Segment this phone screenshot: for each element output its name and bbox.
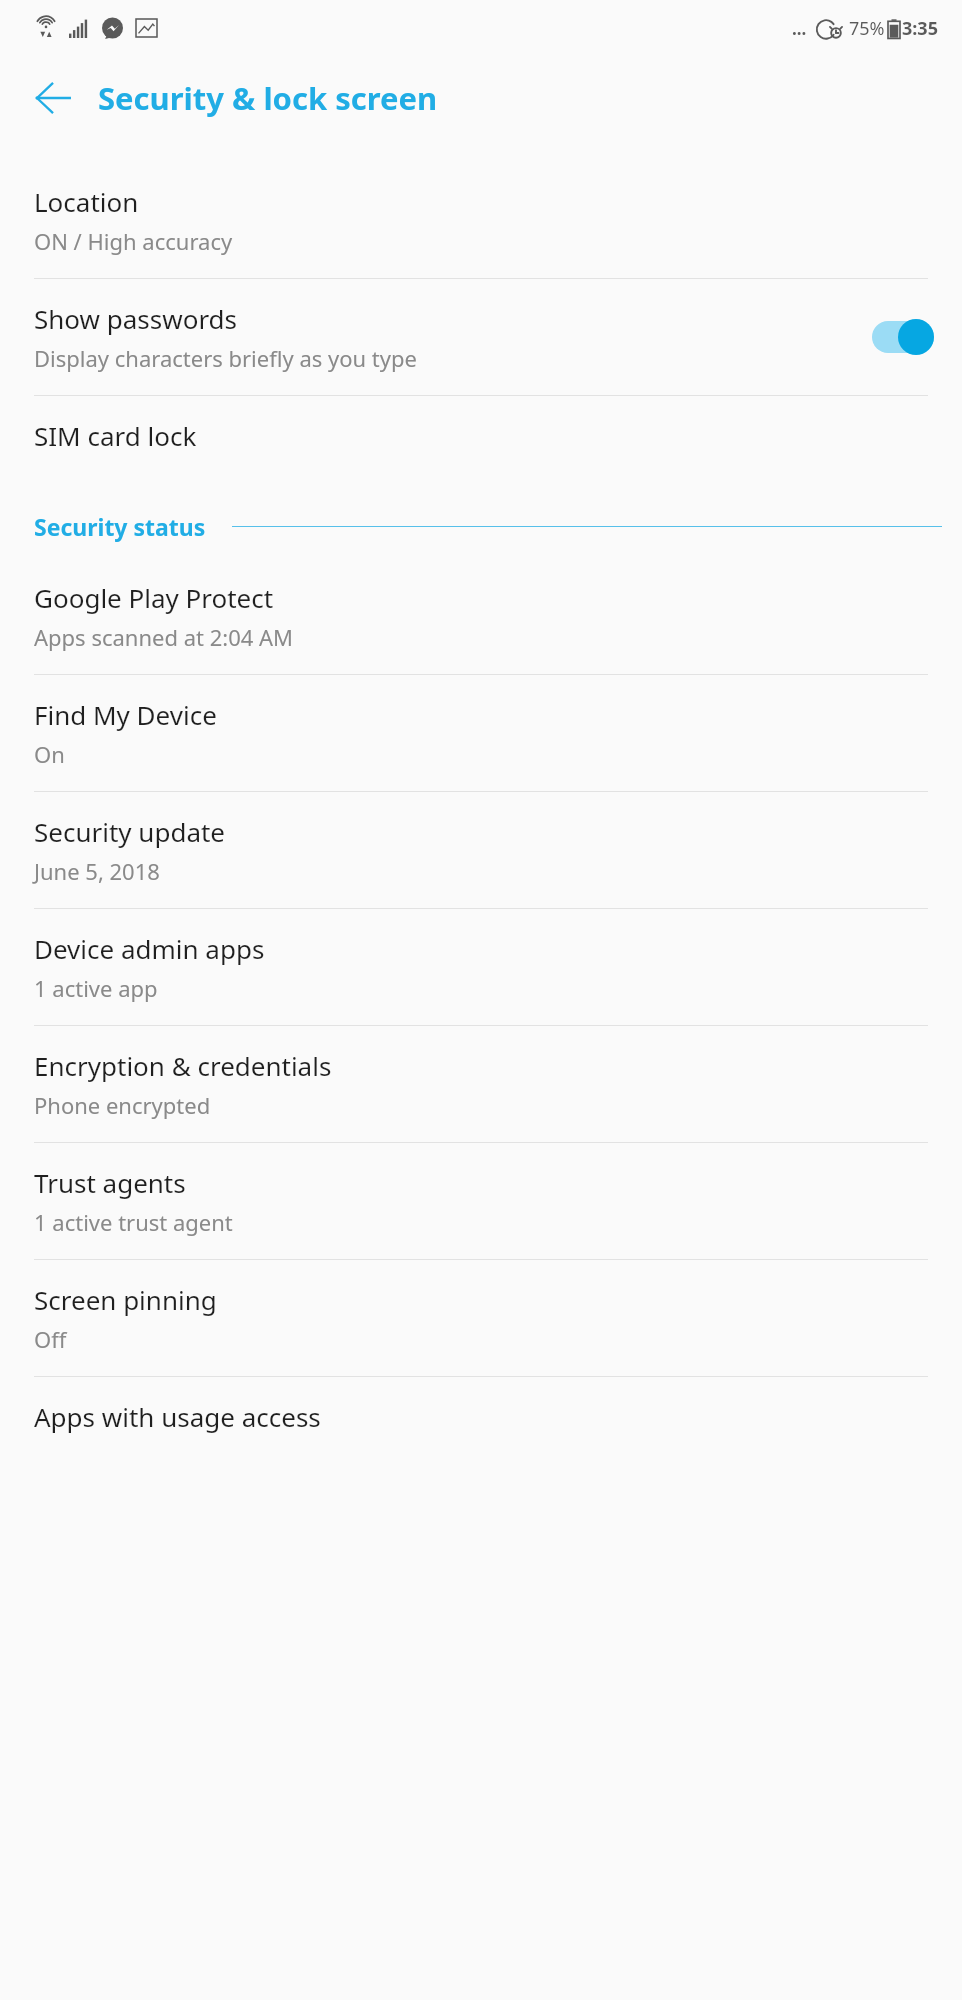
button[interactable]: Find My Device xyxy=(0,675,962,791)
button[interactable]: Security update xyxy=(0,792,962,908)
button[interactable]: Trust agents xyxy=(0,1143,962,1259)
staticText: ON / High accuracy xyxy=(34,226,233,256)
staticText: Trust agents xyxy=(34,1165,186,1200)
staticText: 3:35 xyxy=(902,16,938,41)
staticText: Google Play Protect xyxy=(34,580,274,615)
staticText: Apps scanned at 2:04 AM xyxy=(34,622,294,652)
staticText: 75% xyxy=(849,16,885,41)
staticText: Apps with usage access xyxy=(34,1399,321,1434)
staticText: Security update xyxy=(34,814,226,849)
staticText: 1 active trust agent xyxy=(34,1207,233,1237)
button[interactable]: Location xyxy=(0,162,962,278)
staticText: Encryption & credentials xyxy=(34,1048,332,1083)
staticText: Security status xyxy=(34,511,206,542)
staticText: Find My Device xyxy=(34,697,217,732)
staticText: Off xyxy=(34,1324,67,1354)
staticText: Show passwords xyxy=(34,301,238,336)
staticText: Display characters briefly as you type xyxy=(34,343,417,373)
staticText: Screen pinning xyxy=(34,1282,217,1317)
button[interactable]: Device admin apps xyxy=(0,909,962,1025)
button[interactable]: Back xyxy=(22,67,84,129)
staticText: 1 active app xyxy=(34,973,158,1003)
staticText: ... xyxy=(792,17,807,40)
button[interactable]: Show passwords xyxy=(0,279,962,395)
button[interactable]: SIM card lock xyxy=(0,396,962,475)
button[interactable]: Screen pinning xyxy=(0,1260,962,1376)
staticText: Security & lock screen xyxy=(98,77,438,119)
staticText: June 5, 2018 xyxy=(34,856,160,886)
button[interactable]: Encryption & credentials xyxy=(0,1026,962,1142)
staticText: On xyxy=(34,739,65,769)
staticText: Phone encrypted xyxy=(34,1090,211,1120)
staticText: Device admin apps xyxy=(34,931,265,966)
button[interactable]: Apps with usage access xyxy=(0,1377,962,1456)
staticText: SIM card lock xyxy=(34,418,197,453)
staticText: Location xyxy=(34,184,139,219)
button[interactable]: Google Play Protect xyxy=(0,558,962,674)
